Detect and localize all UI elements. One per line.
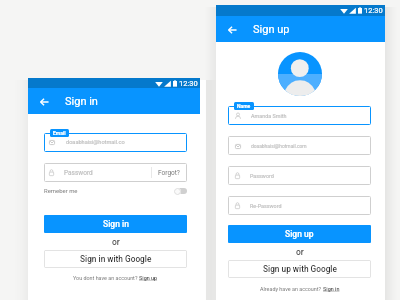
staticText: Sign in: [323, 286, 340, 292]
button[interactable]: Re-Password: [228, 196, 371, 215]
staticText: Sign in: [65, 95, 98, 108]
staticText: Sign up with Google: [263, 264, 337, 274]
button[interactable]: Sign up: [139, 275, 158, 281]
staticText: Already have an account?: [260, 286, 323, 292]
button[interactable]: doaabhaisi@hotmail.co: [44, 133, 187, 152]
button[interactable]: Back: [225, 22, 240, 37]
button[interactable]: Sign up: [228, 225, 371, 243]
staticText: Re-Password: [250, 203, 282, 209]
staticText: You dont have an account?: [73, 275, 139, 281]
staticText: Email: [53, 130, 66, 136]
staticText: Sign up: [139, 275, 158, 281]
staticText: or: [296, 247, 304, 257]
staticText: Amanda Smith: [251, 113, 287, 119]
button[interactable]: Amanda Smith: [228, 106, 371, 125]
staticText: Sign in: [103, 219, 129, 229]
button[interactable]: Back: [37, 94, 52, 109]
button[interactable]: Password: [228, 166, 371, 185]
staticText: Password: [250, 173, 274, 179]
button[interactable]: Password: [44, 163, 187, 182]
button[interactable]: Sign in: [44, 215, 187, 233]
staticText: Sign up: [253, 23, 290, 36]
staticText: Sign up: [285, 229, 314, 239]
button[interactable]: Remember me toggle: [174, 187, 187, 195]
staticText: Remeber me: [44, 187, 78, 194]
button[interactable]: Sign up with Google: [228, 260, 371, 278]
staticText: doaabhaisi@hotmail.co: [66, 139, 125, 146]
button[interactable]: Sign in: [323, 286, 340, 292]
button[interactable]: Sign in with Google: [44, 250, 187, 268]
staticText: Forgot?: [158, 169, 180, 177]
staticText: doaabhaisi@hotmail.com: [251, 143, 307, 149]
staticText: Password: [64, 169, 93, 177]
staticText: Name: [237, 103, 251, 109]
staticText: 12:30: [179, 79, 198, 88]
staticText: or: [112, 237, 120, 247]
staticText: 12:30: [364, 6, 383, 15]
staticText: Sign in with Google: [80, 254, 152, 264]
button[interactable]: doaabhaisi@hotmail.com: [228, 136, 371, 155]
